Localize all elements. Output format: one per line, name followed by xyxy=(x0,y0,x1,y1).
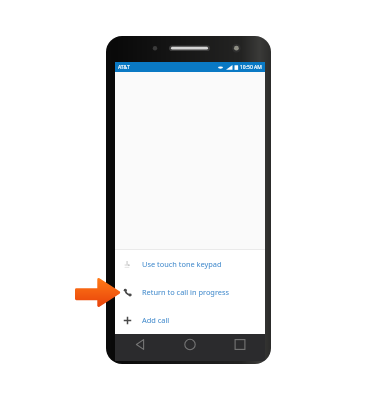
button[interactable]: Use touch tone keypad xyxy=(115,250,265,278)
staticText: AT&T xyxy=(118,64,130,71)
staticText: 10:50 AM xyxy=(240,64,262,71)
staticText: Use touch tone keypad xyxy=(142,259,222,269)
button[interactable]: Back xyxy=(115,334,165,361)
button[interactable]: Return to call in progress xyxy=(115,278,265,306)
button[interactable]: Add call xyxy=(115,306,265,334)
button[interactable]: Recent apps xyxy=(215,334,265,361)
staticText: Add call xyxy=(142,315,170,325)
staticText: Return to call in progress xyxy=(142,287,230,297)
button[interactable]: Home xyxy=(165,334,215,361)
